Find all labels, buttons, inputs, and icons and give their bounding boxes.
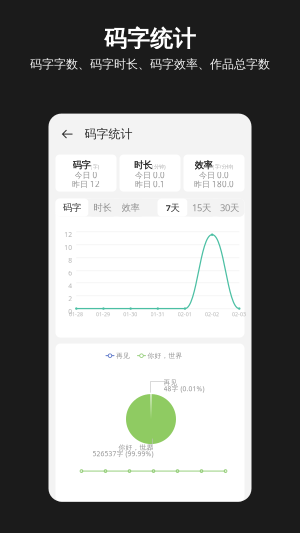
staticText: 效率 [194,159,212,171]
staticText: 10 [64,243,72,252]
staticText: 2 [68,294,72,303]
staticText: 再见 [116,352,130,360]
staticText: 15天 [192,201,211,214]
button[interactable]: 15天 [187,199,215,217]
staticText: 昨日 180.0 [194,179,234,189]
staticText: 今日 0 [74,170,97,180]
staticText: 4 [68,281,72,290]
staticText: 01-30 [123,311,137,318]
staticText: 526537字 (99.99%) [92,449,153,458]
staticText: 30天 [220,201,239,214]
button[interactable]: 时长 [88,199,116,217]
staticText: 码字字数、码字时长、码字效率、作品总字数 [30,57,270,71]
staticText: 昨日 0.1 [135,179,165,189]
button[interactable]: 7天 [157,199,187,217]
staticText: (字/分钟) [212,163,233,170]
staticText: 6 [68,269,72,277]
staticText: 再见 [163,378,177,387]
staticText: 你好，世界 [147,352,182,360]
staticText: 码字 [72,159,90,171]
staticText: 今日 0.0 [199,170,229,180]
staticText: 02-02 [205,311,219,318]
staticText: 02-01 [178,311,192,318]
staticText: 时长 [93,202,111,213]
staticText: 01-31 [150,311,164,318]
staticText: 效率 [121,202,139,213]
button[interactable]: 返回 [58,126,76,142]
staticText: (字) [90,163,99,170]
button[interactable]: 码字 [55,199,88,217]
staticText: 码字 [63,202,81,213]
staticText: 码字统计 [84,127,132,141]
button[interactable]: 效率 [116,199,144,217]
staticText: 8 [68,256,72,265]
staticText: 0 [68,307,72,316]
staticText: 7天 [165,201,179,214]
staticText: 12 [64,230,72,239]
staticText: 时长 [134,159,152,171]
staticText: 01-28 [69,311,83,318]
staticText: 你好，世界 [118,443,153,452]
staticText: 码字统计 [104,25,196,53]
staticText: 01-29 [96,311,110,318]
button[interactable]: 30天 [215,199,243,217]
staticText: 48字 (0.01%) [163,384,204,393]
staticText: 昨日 12 [72,179,100,189]
staticText: (分钟) [152,163,166,170]
staticText: 02-03 [232,311,246,318]
staticText: 今日 0.0 [135,170,165,180]
